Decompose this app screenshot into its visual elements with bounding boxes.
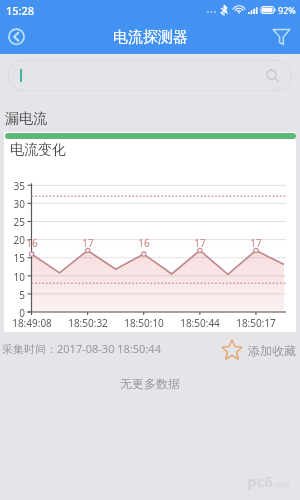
staticText: 添加收藏 [248, 343, 296, 358]
staticText: 5 [4, 288, 25, 302]
staticText: 10 [4, 270, 25, 284]
staticText: 18:50:32 [62, 316, 114, 330]
button[interactable] [8, 60, 292, 91]
staticText: 15:28 [6, 3, 35, 18]
staticText: 92% [278, 4, 296, 16]
staticText: 0 [4, 306, 25, 320]
staticText: 30 [4, 197, 25, 211]
staticText: 17 [190, 236, 210, 250]
staticText: 16 [134, 236, 154, 250]
staticText: 16 [22, 236, 42, 250]
button[interactable]: Back [4, 24, 29, 49]
staticText: 18:50:10 [118, 316, 170, 330]
staticText: 18:49:08 [6, 316, 58, 330]
staticText: 电流变化 [10, 141, 66, 159]
staticText: 15 [4, 251, 25, 265]
button[interactable]: Filter [272, 27, 291, 46]
staticText: 18:50:17 [230, 316, 282, 330]
button[interactable]: 添加收藏 [220, 338, 296, 362]
staticText: 17 [246, 236, 266, 250]
staticText: 采集时间：2017-08-30 18:50:44 [2, 341, 161, 356]
staticText: 35 [4, 179, 25, 193]
staticText: 电流探测器 [113, 28, 188, 47]
staticText: 无更多数据 [0, 376, 300, 391]
staticText: 18:50:44 [174, 316, 226, 330]
staticText: 漏电流 [5, 110, 47, 128]
staticText: 20 [4, 233, 25, 247]
staticText: 17 [78, 236, 98, 250]
staticText: .com [273, 480, 290, 490]
staticText: 25 [4, 215, 25, 229]
staticText: pc6 [247, 471, 273, 491]
